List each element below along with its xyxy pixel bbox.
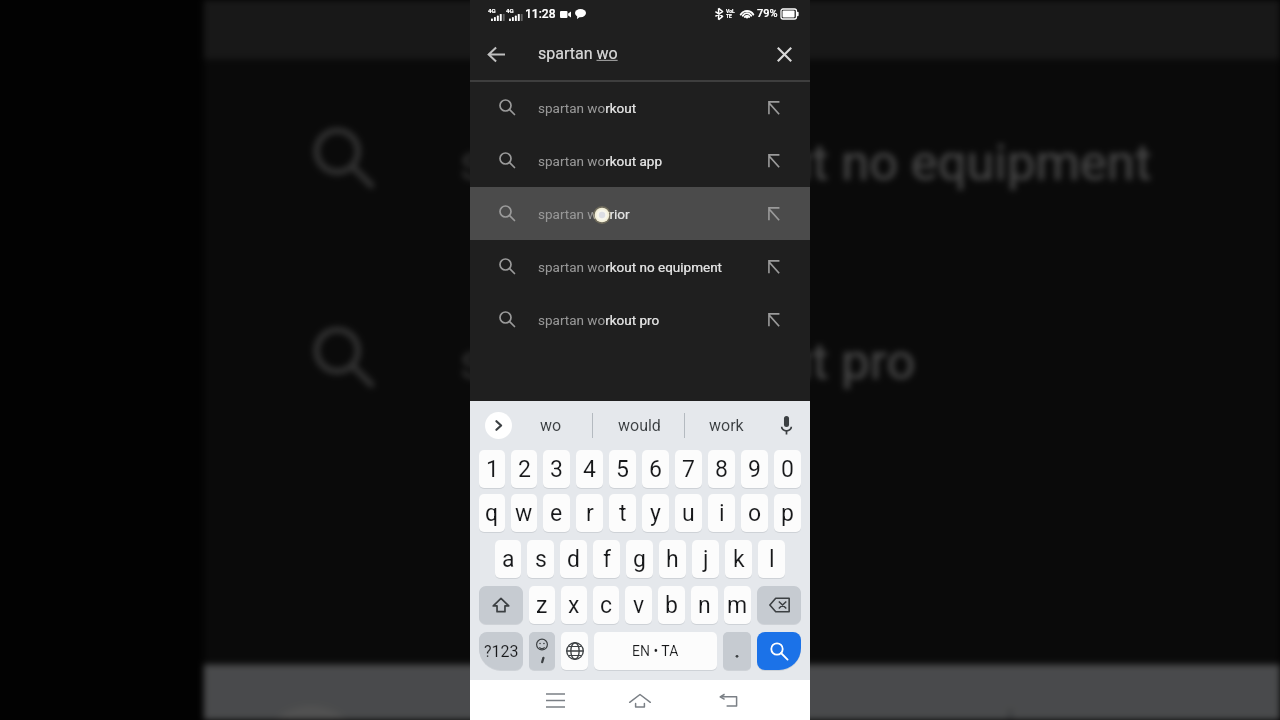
staticText: 4G	[488, 7, 496, 14]
button[interactable]: spartan warrior	[470, 187, 810, 240]
button[interactable]: s	[527, 540, 554, 578]
button[interactable]: b	[658, 586, 685, 624]
button[interactable]: a	[495, 540, 521, 578]
button[interactable]: o	[741, 494, 768, 532]
button[interactable]: 6	[642, 450, 669, 488]
staticText: i	[719, 500, 725, 527]
button[interactable]: j	[692, 540, 719, 578]
button[interactable]: More suggestions	[485, 412, 512, 439]
staticText: 6	[649, 456, 662, 483]
button[interactable]: t	[609, 494, 636, 532]
button[interactable]: x	[561, 586, 587, 624]
button[interactable]: m	[724, 586, 751, 624]
button[interactable]: spartan workout	[470, 81, 810, 134]
button[interactable]: g	[626, 540, 653, 578]
staticText: 11:28	[525, 7, 556, 21]
staticText: t	[619, 500, 627, 527]
button[interactable]: 3	[543, 450, 570, 488]
staticText: 0	[781, 456, 794, 483]
button[interactable]: k	[725, 540, 752, 578]
button[interactable]: work	[1039, 680, 1280, 720]
button[interactable]: wo	[517, 405, 585, 445]
button[interactable]: 2	[511, 450, 537, 488]
button[interactable]: c	[593, 586, 619, 624]
button[interactable]: 4	[576, 450, 603, 488]
button[interactable]	[723, 632, 751, 670]
staticText: 9	[748, 456, 761, 483]
button[interactable]: Back	[706, 680, 752, 720]
button[interactable]: 8	[708, 450, 735, 488]
staticText: p	[781, 500, 794, 527]
button[interactable]: y	[642, 494, 669, 532]
button[interactable]: Recent apps	[532, 680, 578, 720]
button[interactable]: spartan workout app	[470, 134, 810, 187]
staticText: u	[682, 500, 695, 527]
staticText: b	[665, 592, 678, 619]
staticText: e	[550, 500, 563, 527]
button[interactable]: l	[758, 540, 785, 578]
staticText: spartan workout no equipment	[538, 259, 723, 275]
button[interactable]: u	[675, 494, 702, 532]
button[interactable]: f	[593, 540, 620, 578]
staticText: wo	[540, 416, 562, 435]
button[interactable]: Search	[757, 632, 801, 670]
button[interactable]: w	[511, 494, 537, 532]
button[interactable]: Change language	[561, 632, 588, 670]
button[interactable]: More suggestions	[260, 706, 362, 720]
staticText: 79%	[757, 7, 778, 20]
staticText: o	[748, 500, 762, 527]
button[interactable]: i	[708, 494, 735, 532]
button[interactable]: work	[692, 405, 760, 445]
button[interactable]: Backspace	[757, 586, 801, 624]
button[interactable]: d	[560, 540, 587, 578]
button[interactable]: spartan workout no equipment	[470, 240, 810, 293]
button[interactable]: Back	[479, 37, 513, 71]
button[interactable]: ?123	[479, 632, 523, 670]
staticText: n	[698, 592, 711, 619]
staticText: 5	[616, 456, 629, 483]
button[interactable]: Clear search	[767, 37, 801, 71]
button[interactable]: q	[479, 494, 505, 532]
button[interactable]: e	[543, 494, 570, 532]
button[interactable]: Voice input	[771, 410, 801, 440]
staticText: 8	[715, 456, 728, 483]
button[interactable]: Shift	[479, 586, 523, 624]
button[interactable]: Home	[617, 680, 663, 720]
staticText: VoLTE	[726, 8, 737, 19]
button[interactable]: 1	[479, 450, 505, 488]
staticText: spartan warrior	[538, 206, 630, 222]
staticText: spartan workout no equipment	[459, 131, 1155, 191]
button[interactable]: wo	[381, 680, 636, 720]
button[interactable]: p	[774, 494, 801, 532]
staticText: spartan workout app	[538, 153, 663, 169]
button[interactable]: r	[576, 494, 603, 532]
button[interactable]: 7	[675, 450, 702, 488]
staticText: w	[515, 500, 533, 527]
staticText: g	[633, 546, 646, 573]
staticText: r	[586, 500, 594, 527]
staticText: f	[603, 546, 611, 573]
staticText: spartan workout pro	[538, 312, 660, 328]
button[interactable]: v	[625, 586, 652, 624]
button[interactable]: 9	[741, 450, 768, 488]
staticText: would	[618, 416, 661, 435]
button[interactable]: 0	[774, 450, 801, 488]
button[interactable]: z	[529, 586, 555, 624]
button[interactable]: h	[659, 540, 686, 578]
staticText: spartan workout	[538, 100, 637, 116]
staticText: work	[709, 416, 744, 435]
button[interactable]: spartan workout no equipment	[204, 59, 1280, 258]
button[interactable]: spartan warrior	[204, 0, 1280, 59]
button[interactable]: Emoji	[529, 632, 555, 670]
staticText: a	[502, 546, 515, 573]
staticText: m	[727, 592, 748, 619]
button[interactable]: 5	[609, 450, 636, 488]
staticText: q	[485, 500, 499, 527]
button[interactable]: EN • TA	[594, 632, 717, 670]
staticText: 1	[486, 456, 499, 483]
button[interactable]: spartan workout pro	[470, 293, 810, 346]
button[interactable]: spartan workout pro	[204, 258, 1280, 458]
button[interactable]: would	[711, 680, 967, 720]
button[interactable]: would	[605, 405, 673, 445]
button[interactable]: n	[691, 586, 718, 624]
